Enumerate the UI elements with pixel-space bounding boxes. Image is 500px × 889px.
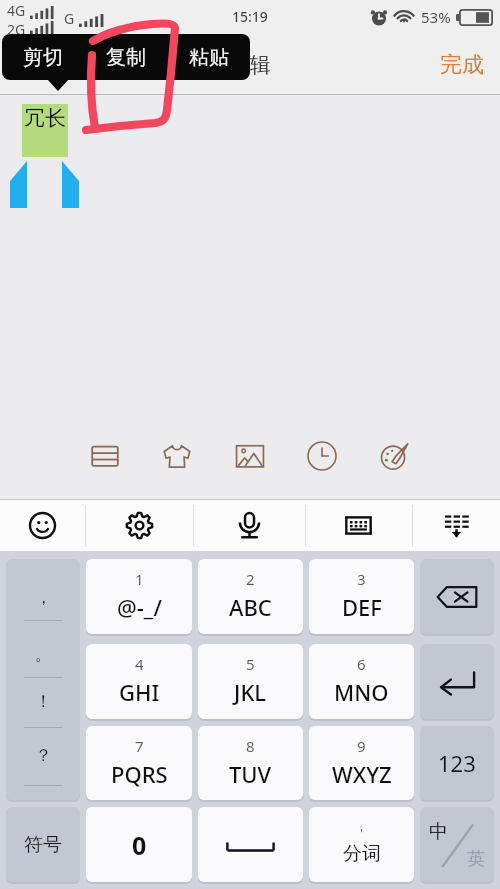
button[interactable]: 9 WXYZ <box>309 726 414 800</box>
staticText: 6 <box>357 654 366 674</box>
staticText: MNO <box>334 677 389 707</box>
staticText: ， <box>35 587 52 608</box>
staticText: 剪切 <box>23 45 63 70</box>
staticText: 2G <box>7 20 26 35</box>
button[interactable]: 5 JKL <box>198 644 303 719</box>
staticText: 8 <box>246 736 255 756</box>
staticText: WXYZ <box>332 759 392 789</box>
staticText: 。 <box>35 644 52 665</box>
staticText: TUV <box>229 759 272 789</box>
button[interactable]: 剪切 <box>2 34 84 80</box>
button[interactable]: Keyboard <box>305 500 412 551</box>
button[interactable]: 2 ABC <box>198 559 303 634</box>
button[interactable]: Time <box>296 430 348 482</box>
staticText: 9 <box>357 736 366 756</box>
button[interactable]: Settings <box>85 500 193 551</box>
staticText: ABC <box>229 592 272 622</box>
staticText: 完成 <box>440 51 484 79</box>
staticText: 7 <box>135 736 144 756</box>
button[interactable]: 0 <box>86 807 192 882</box>
button[interactable]: List <box>79 430 131 482</box>
staticText: 15:19 <box>232 7 268 26</box>
staticText: 符号 <box>24 833 62 857</box>
button[interactable]: Space <box>198 807 303 882</box>
staticText: ！ <box>35 691 52 712</box>
button[interactable]: 8 TUV <box>198 726 303 800</box>
staticText: JKL <box>234 677 267 707</box>
staticText: 4G <box>7 1 26 20</box>
staticText: @-_/ <box>117 592 162 622</box>
button[interactable]: Backspace <box>420 559 494 634</box>
staticText: 复制 <box>106 45 146 70</box>
button[interactable]: Image <box>224 430 276 482</box>
staticText: GHI <box>119 677 160 707</box>
staticText: 2 <box>246 569 255 589</box>
staticText: 0 <box>132 828 147 862</box>
staticText: ？ <box>35 745 52 766</box>
staticText: 英 <box>467 848 485 871</box>
button[interactable]: 4 GHI <box>86 644 192 719</box>
staticText: 3 <box>357 569 366 589</box>
staticText: 53% <box>421 7 451 27</box>
staticText: DEF <box>342 592 382 622</box>
button[interactable]: Enter <box>420 644 494 719</box>
button[interactable]: Voice input <box>193 500 305 551</box>
staticText: 粘贴 <box>189 45 229 70</box>
button[interactable]: 完成 <box>424 41 500 89</box>
staticText: ' <box>360 824 363 842</box>
button[interactable]: Punctuation <box>6 559 80 800</box>
button[interactable]: 123 <box>420 726 494 800</box>
button[interactable]: 6 MNO <box>309 644 414 719</box>
button[interactable]: 复制 <box>84 34 167 80</box>
button[interactable]: 中英切换 <box>420 807 494 882</box>
staticText: PQRS <box>111 759 168 789</box>
staticText: 5 <box>246 654 255 674</box>
staticText: 4 <box>135 654 144 674</box>
button[interactable]: 分词 <box>309 807 414 882</box>
staticText: 分词 <box>343 842 381 866</box>
button[interactable]: Hide keyboard <box>412 500 500 551</box>
staticText: 冗长 <box>24 105 66 131</box>
button[interactable]: Emoji <box>0 500 85 551</box>
button[interactable]: 粘贴 <box>167 34 250 80</box>
button[interactable]: 3 DEF <box>309 559 414 634</box>
button[interactable]: Theme <box>368 430 420 482</box>
staticText: G <box>64 9 75 28</box>
button[interactable]: 7 PQRS <box>86 726 192 800</box>
button[interactable]: 1 @-_/ <box>86 559 192 634</box>
button[interactable]: Clothes <box>151 430 203 482</box>
staticText: 中 <box>429 820 448 844</box>
staticText: 1 <box>135 569 144 589</box>
staticText: 123 <box>438 748 476 778</box>
button[interactable]: 符号 <box>6 807 80 882</box>
staticText: 编辑 <box>229 52 271 78</box>
